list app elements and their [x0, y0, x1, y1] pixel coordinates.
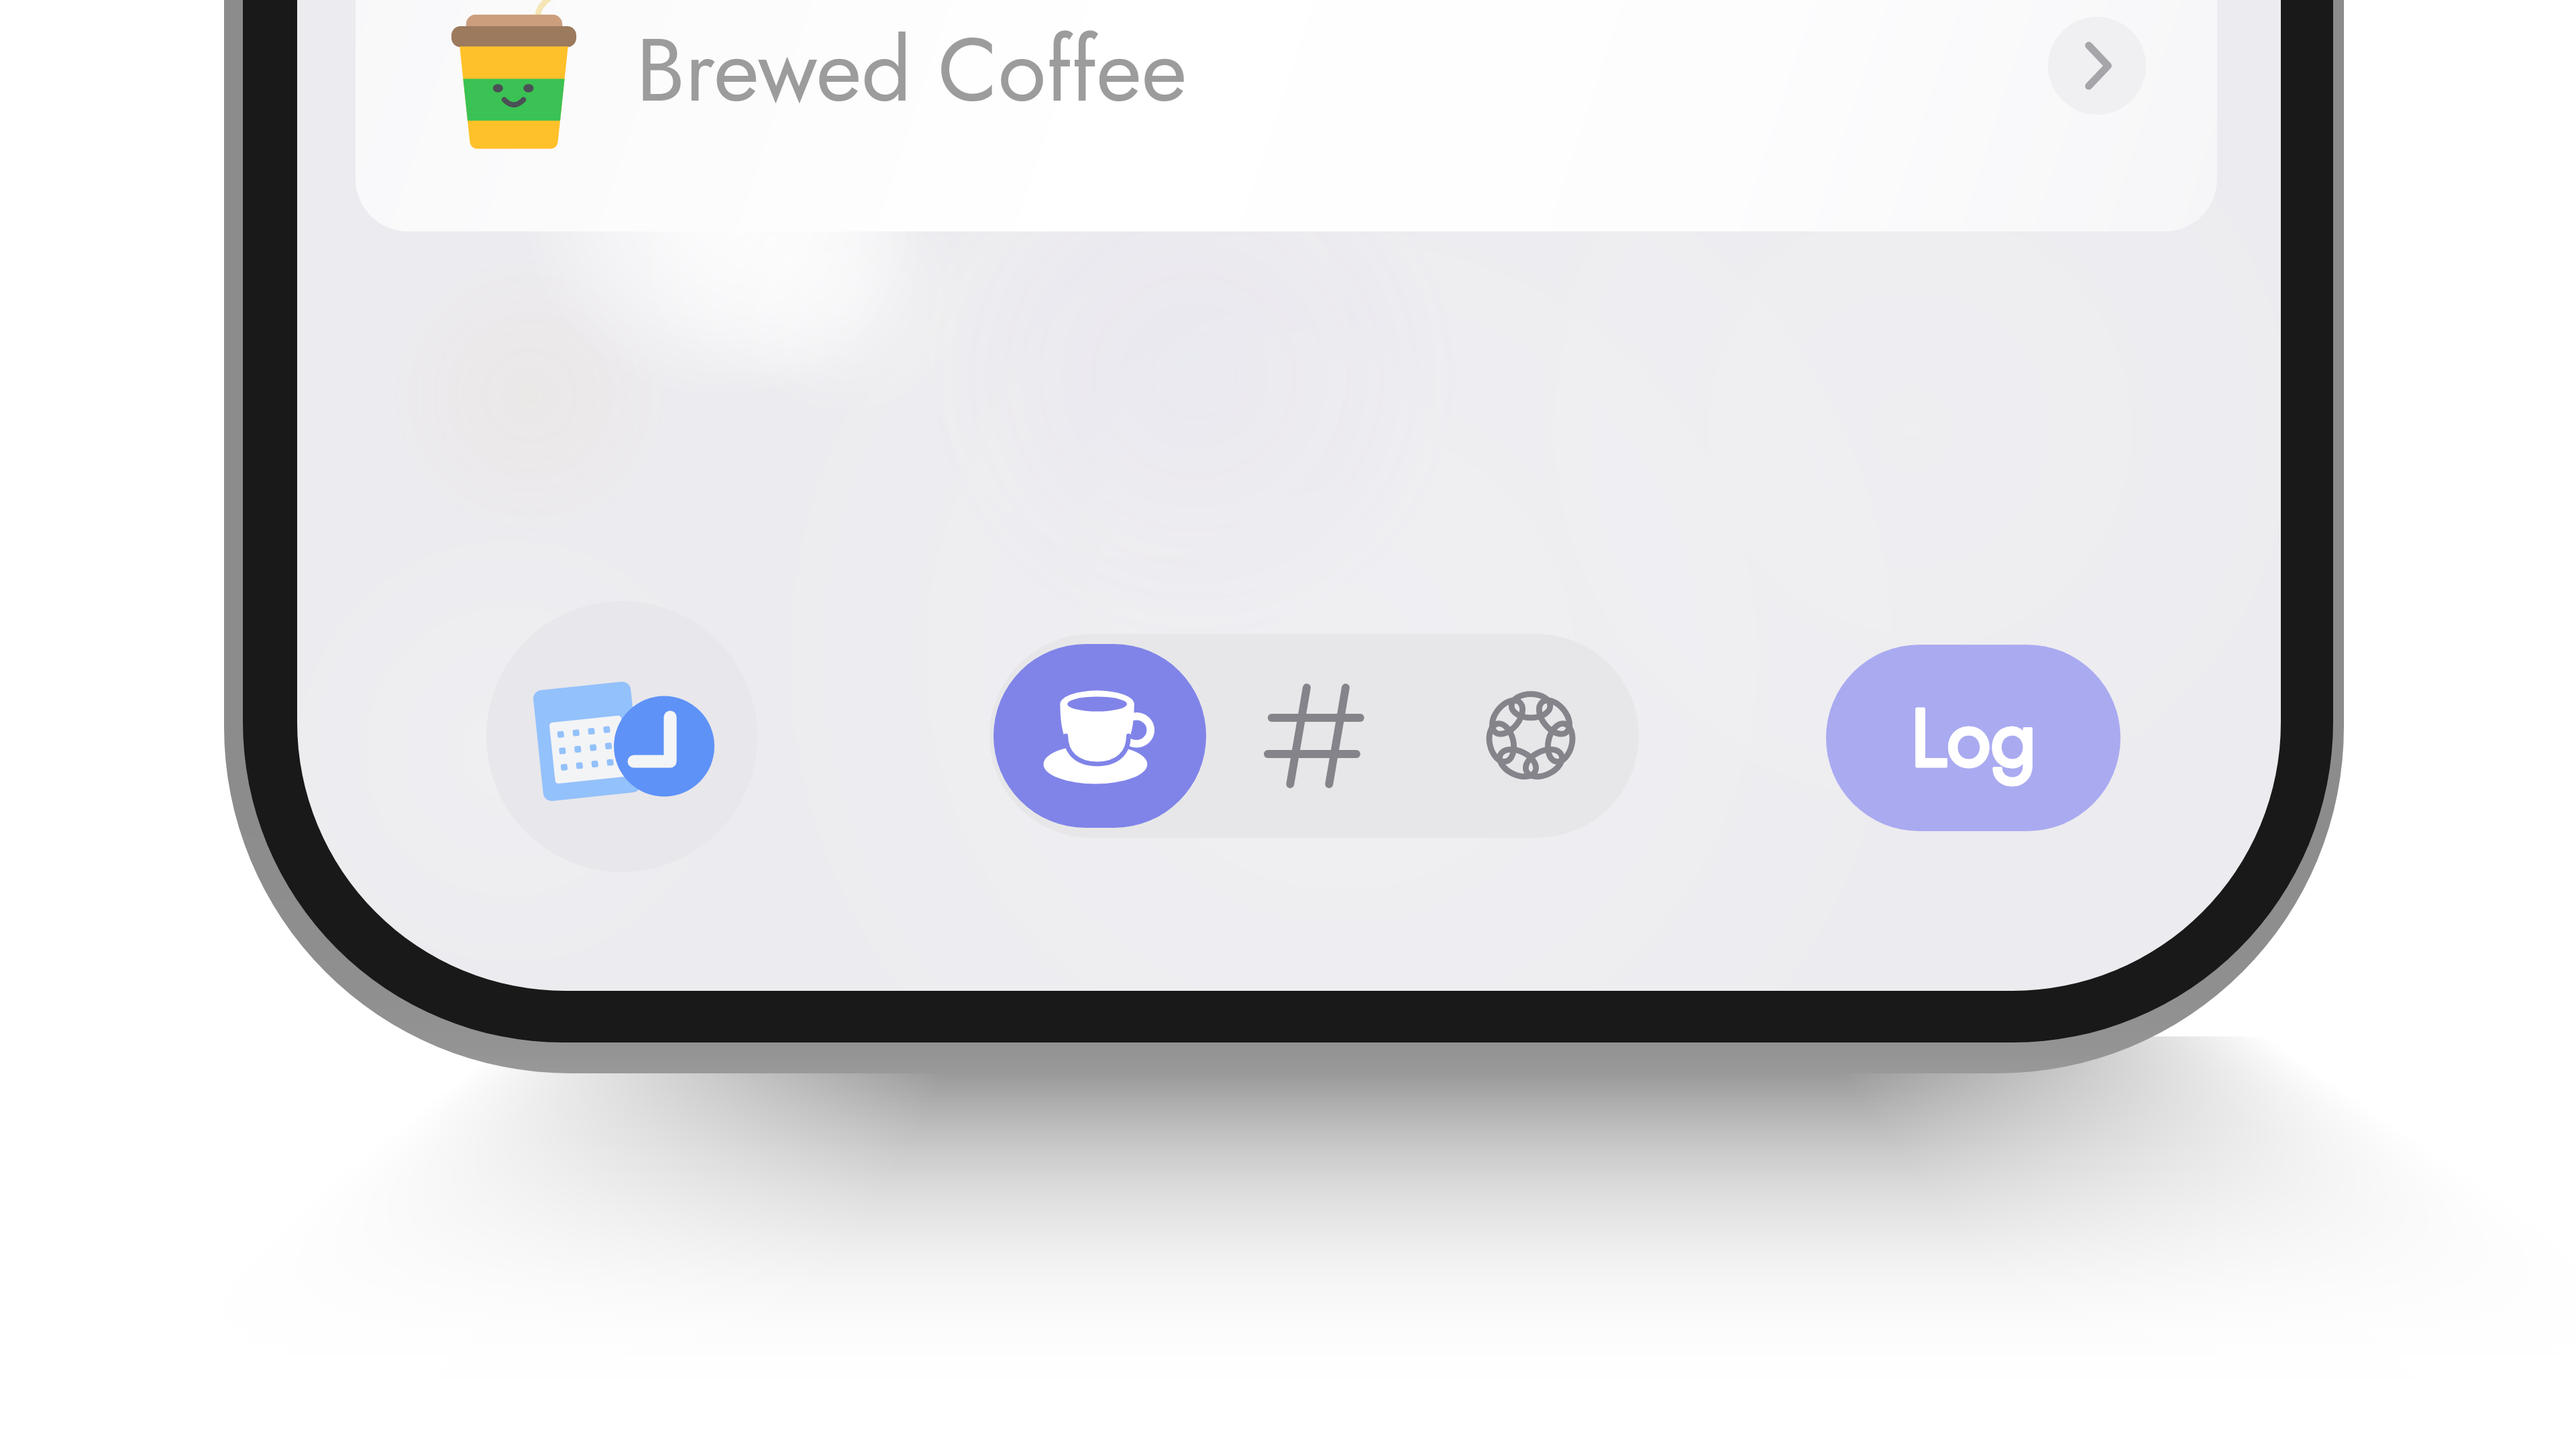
staticText: Brewed Coffee	[636, 7, 1187, 133]
button[interactable]: Discover	[1422, 634, 1639, 838]
button[interactable]: History	[486, 601, 757, 872]
staticText: Log	[1911, 680, 2037, 796]
button[interactable]: Drinks	[994, 644, 1206, 828]
button[interactable]: Open Brewed Coffee	[2048, 17, 2146, 115]
button[interactable]: Tags	[1206, 634, 1422, 838]
staticText: Log	[1911, 680, 2037, 796]
button[interactable]: Log	[1826, 645, 2121, 831]
